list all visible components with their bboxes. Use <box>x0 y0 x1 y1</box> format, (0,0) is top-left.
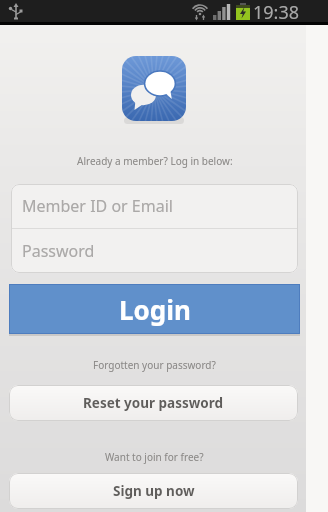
button[interactable]: Password <box>22 229 298 273</box>
button[interactable]: Sign up now <box>9 473 298 509</box>
staticText: Reset your password <box>83 394 224 412</box>
staticText: Login <box>119 292 191 327</box>
staticText: Member ID or Email <box>22 195 173 217</box>
staticText: Already a member? Log in below: <box>77 154 233 168</box>
button[interactable]: Reset your password <box>9 385 298 421</box>
staticText: Sign up now <box>113 482 195 500</box>
staticText: Want to join for free? <box>105 450 204 464</box>
staticText: Password <box>22 240 95 262</box>
button[interactable]: Login <box>9 284 300 334</box>
staticText: Forgotten your password? <box>93 358 216 372</box>
button[interactable]: Member ID or Email <box>22 184 298 228</box>
staticText: 19:38 <box>253 0 300 24</box>
